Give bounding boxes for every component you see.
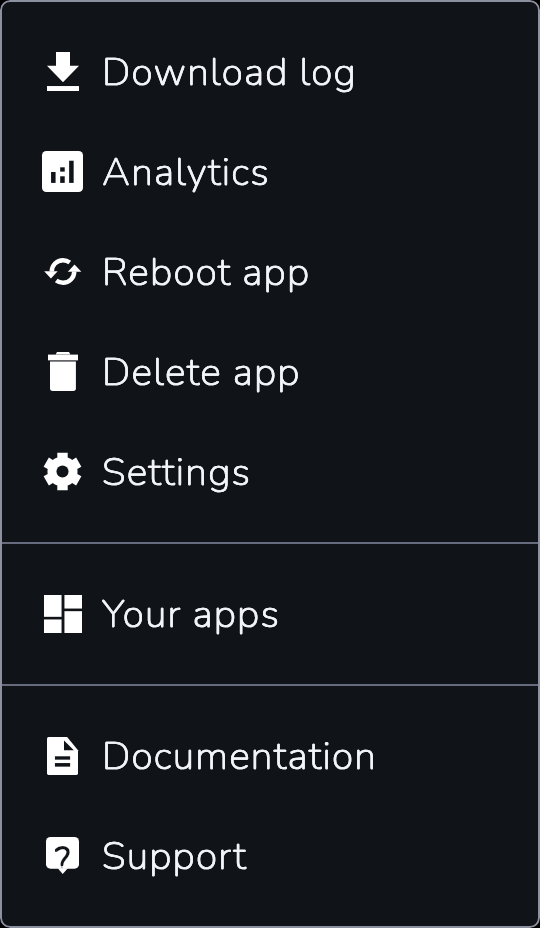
staticText: Download log xyxy=(102,46,358,99)
button[interactable]: Your apps xyxy=(0,563,540,663)
button[interactable]: ? xyxy=(0,805,540,905)
button[interactable]: Documentation xyxy=(0,705,540,805)
staticText: Settings xyxy=(102,446,252,499)
staticText: Analytics xyxy=(102,146,270,199)
staticText: Reboot app xyxy=(102,246,311,299)
staticText: Delete app xyxy=(102,346,301,399)
button[interactable]: Delete app xyxy=(0,321,540,421)
staticText: ? xyxy=(55,837,70,868)
button[interactable]: Settings xyxy=(0,421,540,521)
button[interactable]: Reboot app xyxy=(0,221,540,321)
staticText: Download log xyxy=(102,46,358,99)
staticText: Analytics xyxy=(102,146,270,199)
staticText: Your apps xyxy=(102,588,281,641)
staticText: Settings xyxy=(102,446,252,499)
staticText: Documentation xyxy=(102,730,377,783)
button[interactable]: Download log xyxy=(0,21,540,121)
staticText: Documentation xyxy=(102,730,377,783)
staticText: Reboot app xyxy=(102,246,311,299)
button[interactable]: Analytics xyxy=(0,121,540,221)
staticText: Your apps xyxy=(102,588,281,641)
staticText: Support xyxy=(102,830,247,883)
staticText: Delete app xyxy=(102,346,301,399)
staticText: Support xyxy=(102,830,247,883)
